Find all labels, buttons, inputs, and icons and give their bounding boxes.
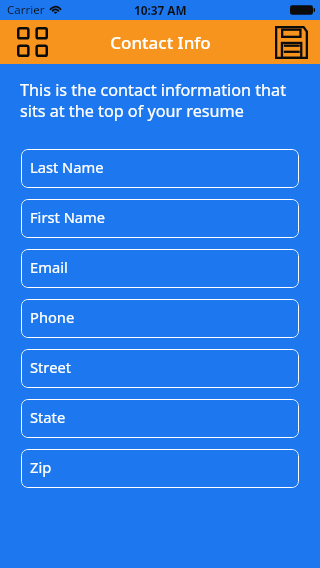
staticText: Email xyxy=(30,257,68,277)
button[interactable]: State xyxy=(21,399,299,438)
staticText: Carrier xyxy=(7,2,45,18)
button[interactable]: Phone xyxy=(21,299,299,338)
staticText: This is the contact information that sit… xyxy=(20,79,296,121)
staticText: Contact Info xyxy=(110,31,211,54)
button[interactable]: First Name xyxy=(21,199,299,238)
button[interactable]: Last Name xyxy=(21,149,299,188)
staticText: State xyxy=(30,407,66,427)
staticText: First Name xyxy=(30,207,106,227)
staticText: Phone xyxy=(30,307,75,327)
staticText: Last Name xyxy=(30,157,104,177)
button[interactable]: Save xyxy=(273,24,309,60)
button[interactable]: Zip xyxy=(21,449,299,488)
button[interactable]: Menu xyxy=(14,24,50,60)
staticText: Zip xyxy=(30,457,52,477)
button[interactable]: Email xyxy=(21,249,299,288)
button[interactable]: Street xyxy=(21,349,299,388)
staticText: 10:37 AM xyxy=(134,2,187,18)
staticText: Street xyxy=(30,357,72,377)
